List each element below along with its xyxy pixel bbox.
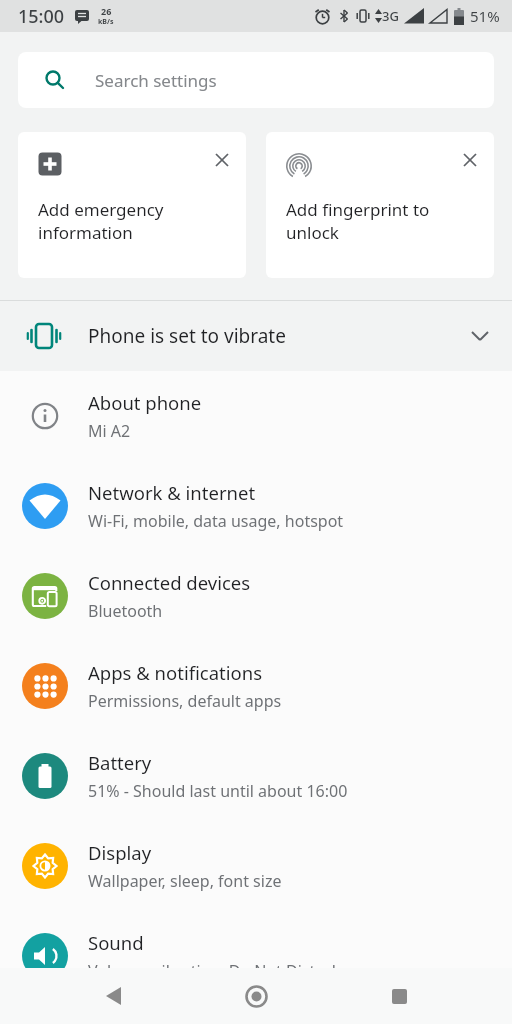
button[interactable]: Add fingerprint to xyxy=(266,132,494,278)
staticText: 51% - Should last until about 16:00 xyxy=(88,780,348,802)
staticText: information xyxy=(38,221,133,244)
button[interactable]: Add emergency xyxy=(18,132,246,278)
staticText: Wi-Fi, mobile, data usage, hotspot xyxy=(88,510,344,532)
button[interactable]: Display xyxy=(0,821,512,911)
staticText: Phone is set to vibrate xyxy=(88,323,286,349)
staticText: Add emergency xyxy=(38,198,164,221)
staticText: Apps & notifications xyxy=(88,660,263,685)
button[interactable] xyxy=(456,146,484,174)
staticText: Connected devices xyxy=(88,570,251,595)
button[interactable] xyxy=(232,972,280,1020)
staticText: kB/s xyxy=(98,17,114,27)
staticText: Volume, vibration, Do Not Disturb xyxy=(88,960,342,982)
staticText: About phone xyxy=(88,390,202,415)
button[interactable]: Battery xyxy=(0,731,512,821)
button[interactable]: Connected devices xyxy=(0,551,512,641)
button[interactable]: Network & internet xyxy=(0,461,512,551)
staticText: Wallpaper, sleep, font size xyxy=(88,870,282,892)
staticText: Bluetooth xyxy=(88,600,163,622)
staticText: 26 xyxy=(101,5,112,17)
staticText: 15:00 xyxy=(18,4,65,29)
staticText: Sound xyxy=(88,930,144,955)
staticText: Mi A2 xyxy=(88,420,131,442)
staticText: unlock xyxy=(286,221,339,244)
staticText: Search settings xyxy=(95,69,217,92)
button[interactable]: About phone xyxy=(0,371,512,461)
button[interactable]: Search settings xyxy=(18,52,494,108)
staticText: Add fingerprint to xyxy=(286,198,430,221)
button[interactable]: Phone is set to vibrate xyxy=(0,301,512,371)
button[interactable]: Sound xyxy=(0,911,512,1001)
button[interactable]: Apps & notifications xyxy=(0,641,512,731)
staticText: Network & internet xyxy=(88,480,256,505)
staticText: 3G xyxy=(382,7,399,25)
button[interactable] xyxy=(375,972,423,1020)
staticText: Permissions, default apps xyxy=(88,690,282,712)
staticText: Battery xyxy=(88,750,152,775)
staticText: Display xyxy=(88,840,152,865)
staticText: 51% xyxy=(470,6,500,26)
button[interactable] xyxy=(89,972,137,1020)
button[interactable] xyxy=(208,146,236,174)
